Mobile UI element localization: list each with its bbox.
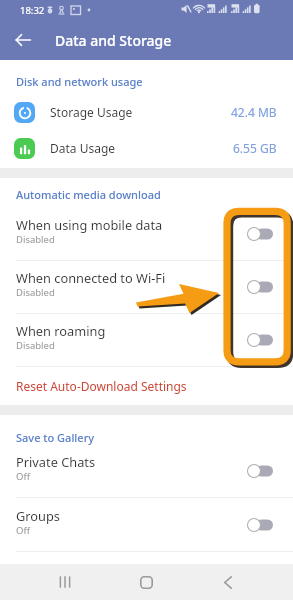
button[interactable]: Toggle When roaming <box>247 333 273 347</box>
staticText: Groups <box>16 507 60 524</box>
button[interactable]: Data Usage <box>0 130 293 166</box>
staticText: Automatic media download <box>16 187 161 202</box>
staticText: Disabled <box>16 339 55 352</box>
staticText: 42.4 MB <box>231 104 277 120</box>
button[interactable]: Private Chats <box>0 445 293 497</box>
staticText: Storage Usage <box>50 104 133 120</box>
staticText: Save to Gallery <box>16 430 95 445</box>
button[interactable]: Toggle When connected to Wi-Fi <box>247 280 273 294</box>
staticText: Private Chats <box>16 453 96 470</box>
staticText: 6.55 GB <box>233 140 277 156</box>
button[interactable]: Storage Usage <box>0 94 293 130</box>
button[interactable]: When connected to Wi-Fi <box>0 261 293 313</box>
button[interactable]: When roaming <box>0 314 293 366</box>
button[interactable]: Home <box>118 564 174 600</box>
staticText: Disabled <box>16 233 55 246</box>
staticText: Data Usage <box>50 140 116 156</box>
button[interactable]: Toggle Groups <box>247 518 273 532</box>
staticText: Data and Storage <box>55 31 172 50</box>
staticText: When using mobile data <box>16 216 163 233</box>
button[interactable]: Back <box>9 26 37 54</box>
button[interactable]: Back <box>200 564 256 600</box>
staticText: 18:32 <box>20 4 45 17</box>
button[interactable]: Reset Auto-Download Settings <box>0 367 293 405</box>
staticText: Disk and network usage <box>16 74 143 89</box>
button[interactable]: When using mobile data <box>0 208 293 260</box>
button[interactable]: Toggle Private Chats <box>247 464 273 478</box>
staticText: Disabled <box>16 286 55 299</box>
button[interactable]: Groups <box>0 499 293 551</box>
staticText: Reset Auto-Download Settings <box>16 378 187 394</box>
staticText: When roaming <box>16 322 106 339</box>
button[interactable]: Recent apps <box>37 564 93 600</box>
staticText: When connected to Wi-Fi <box>16 269 166 286</box>
staticText: Off <box>16 524 30 537</box>
button[interactable]: Toggle When using mobile data <box>247 227 273 241</box>
staticText: Off <box>16 470 30 483</box>
